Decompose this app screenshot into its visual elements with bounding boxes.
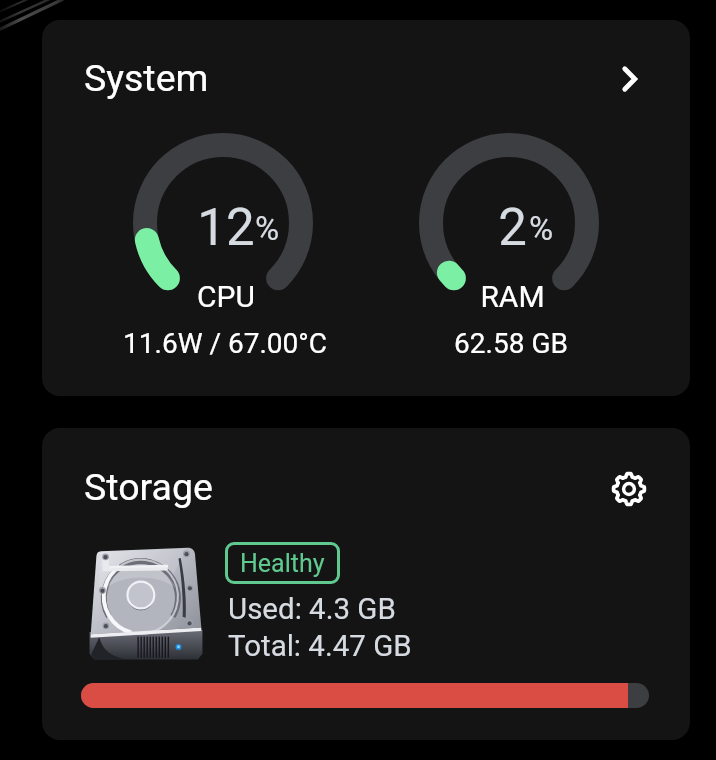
staticText: Total: 4.47 GB: [228, 629, 412, 664]
button[interactable]: System: [42, 20, 690, 396]
staticText: 12: [197, 198, 255, 258]
staticText: 62.58 GB: [454, 327, 568, 360]
staticText: CPU: [197, 279, 255, 314]
staticText: System: [84, 56, 209, 100]
staticText: %: [529, 209, 554, 248]
button[interactable]: Storage: [42, 428, 690, 740]
button[interactable]: Open system details: [613, 62, 647, 96]
button[interactable]: Storage settings: [610, 470, 648, 508]
staticText: Used: 4.3 GB: [228, 592, 396, 627]
staticText: RAM: [480, 279, 545, 314]
staticText: Healthy: [240, 549, 325, 578]
staticText: Storage: [84, 465, 213, 509]
staticText: 11.6W / 67.00°C: [123, 327, 327, 360]
staticText: %: [255, 209, 280, 248]
staticText: 2: [498, 198, 527, 258]
